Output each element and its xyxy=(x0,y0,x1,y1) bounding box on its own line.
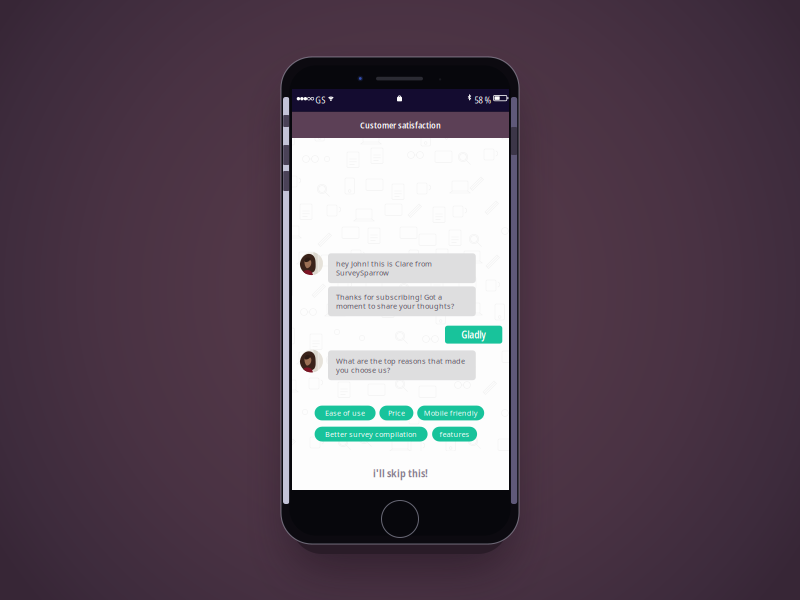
button[interactable]: Price xyxy=(379,406,413,420)
staticText: Customer satisfaction xyxy=(360,119,441,131)
staticText: Better survey compilation xyxy=(325,429,417,439)
staticText: Thanks for subscribing! Got a xyxy=(336,292,442,302)
staticText: you choose us? xyxy=(336,365,390,375)
staticText: i'll skip this! xyxy=(373,466,428,480)
staticText: hey John! this is Clare from xyxy=(336,259,432,269)
staticText: GS xyxy=(315,94,325,106)
staticText: SurveySparrow xyxy=(336,268,389,278)
staticText: Ease of use xyxy=(325,408,365,418)
button[interactable]: Ease of use xyxy=(315,406,376,420)
button[interactable]: i'll skip this! xyxy=(292,465,509,481)
button[interactable]: Mobile friendly xyxy=(417,406,484,420)
staticText: Gladly xyxy=(461,328,486,341)
staticText: Mobile friendly xyxy=(424,408,478,418)
staticText: moment to share your thoughts? xyxy=(336,301,454,311)
staticText: What are the top reasons that made xyxy=(336,356,465,366)
staticText: 58 % xyxy=(474,94,491,106)
button[interactable]: Better survey compilation xyxy=(315,427,428,441)
staticText: features xyxy=(440,429,470,439)
button[interactable]: features xyxy=(432,427,477,441)
staticText: Price xyxy=(388,408,405,418)
button[interactable]: Gladly xyxy=(445,326,502,344)
